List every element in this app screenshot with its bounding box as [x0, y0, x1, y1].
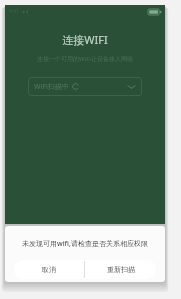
button[interactable]: WiFi扫描中 — [28, 77, 142, 96]
button[interactable]: 重新扫描 — [85, 260, 156, 279]
staticText: 重新扫描 — [107, 265, 135, 274]
staticText: 连接一个可用的WiFi让设备接入网络 — [37, 55, 133, 63]
other: Battery — [148, 9, 161, 15]
staticText: 9:41 — [9, 8, 19, 15]
staticText: ◆ ▮ — [22, 9, 29, 14]
button[interactable]: 取消 — [14, 260, 84, 279]
staticText: 取消 — [42, 265, 56, 274]
other: Expand — [127, 84, 136, 90]
staticText: WiFi扫描中 — [34, 82, 69, 92]
staticText: 连接WIFI — [62, 32, 108, 47]
staticText: 未发现可用wifi,请检查是否关系相应权限 — [22, 239, 148, 249]
